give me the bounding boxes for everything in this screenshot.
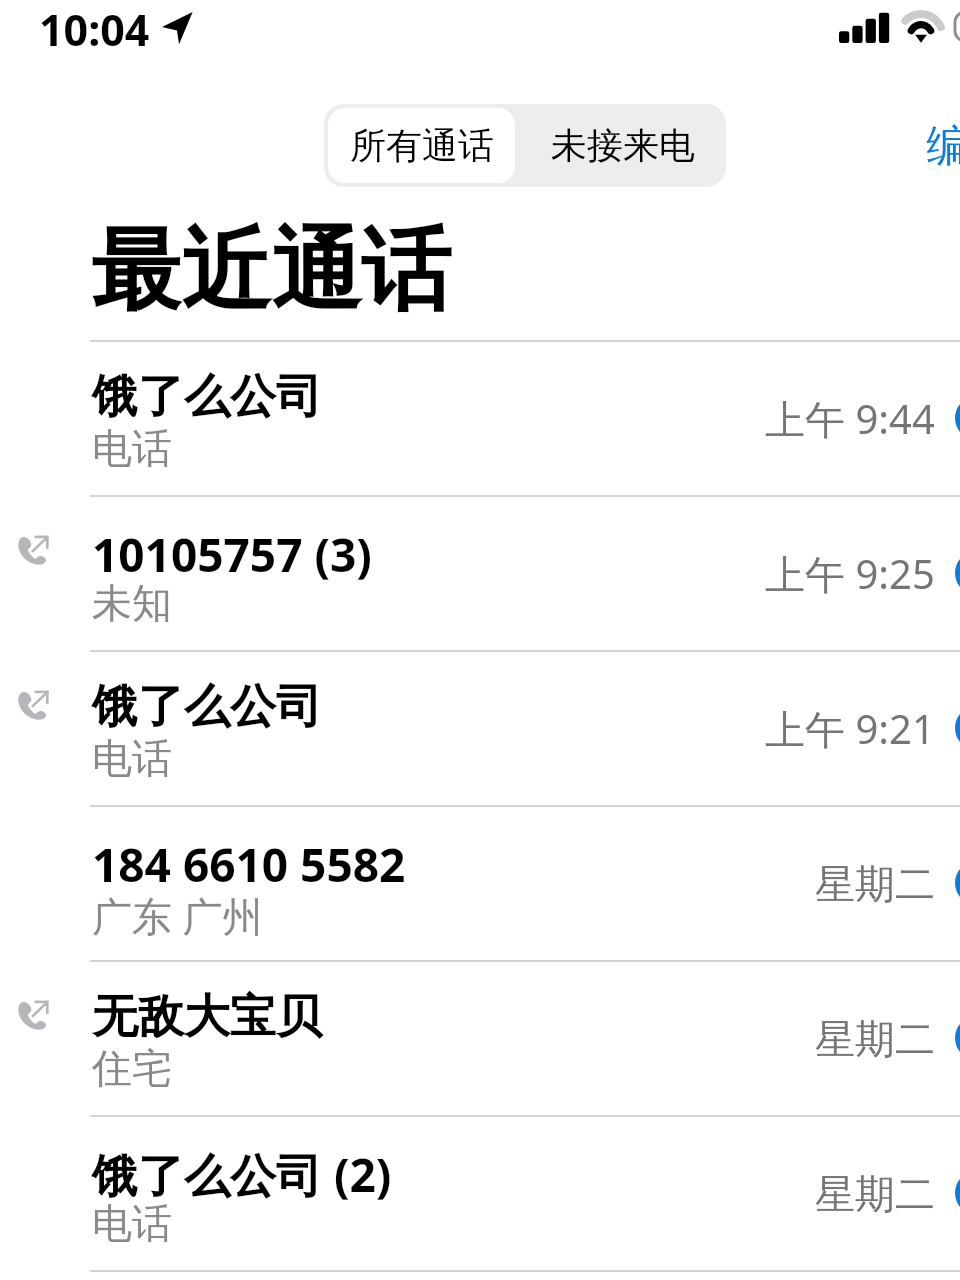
staticText: 电话: [92, 423, 172, 473]
staticText: 184 6610 5582: [92, 833, 406, 896]
staticText: 10:04: [39, 0, 150, 59]
staticText: 上午 9:25: [765, 546, 935, 601]
button[interactable]: More info: [955, 1016, 960, 1060]
staticText: 住宅: [92, 1043, 172, 1093]
other: Outgoing call: [16, 533, 51, 567]
button[interactable]: More info: [955, 551, 960, 595]
button[interactable]: More info: [955, 396, 960, 440]
button[interactable]: More info: [955, 706, 960, 750]
staticText: 广东 广州: [92, 888, 263, 943]
staticText: 最近通话: [91, 214, 451, 327]
button[interactable]: Outgoing call: [0, 651, 960, 806]
staticText: 电话: [92, 733, 172, 783]
staticText: 未知: [92, 578, 172, 628]
other: Outgoing call: [16, 998, 51, 1032]
staticText: 上午 9:21: [765, 701, 935, 756]
staticText: 编辑: [926, 119, 960, 174]
staticText: 10105757 (3): [92, 523, 372, 586]
button[interactable]: 饿了么公司 (2): [0, 1116, 960, 1271]
staticText: 所有通话: [350, 123, 494, 168]
staticText: 上午 9:44: [765, 391, 935, 446]
staticText: 饿了么公司: [92, 678, 322, 736]
staticText: 星期二: [815, 859, 935, 909]
button[interactable]: More info: [955, 861, 960, 905]
button[interactable]: 饿了么公司: [0, 341, 960, 496]
button[interactable]: 未接来电: [519, 104, 726, 187]
button[interactable]: 184 6610 5582: [0, 806, 960, 961]
button[interactable]: 编辑: [926, 105, 960, 188]
other: Outgoing call: [16, 688, 51, 722]
staticText: 星期二: [815, 1014, 935, 1064]
button[interactable]: Outgoing call: [0, 961, 960, 1116]
staticText: 电话: [92, 1198, 172, 1248]
staticText: 未接来电: [551, 123, 695, 168]
staticText: 无敌大宝贝: [92, 988, 322, 1046]
staticText: 饿了么公司: [92, 368, 322, 426]
button[interactable]: More info: [955, 1171, 960, 1215]
button[interactable]: Outgoing call: [0, 496, 960, 651]
button[interactable]: 所有通话: [328, 108, 515, 183]
staticText: 星期二: [815, 1169, 935, 1219]
staticText: 饿了么公司 (2): [92, 1143, 392, 1206]
